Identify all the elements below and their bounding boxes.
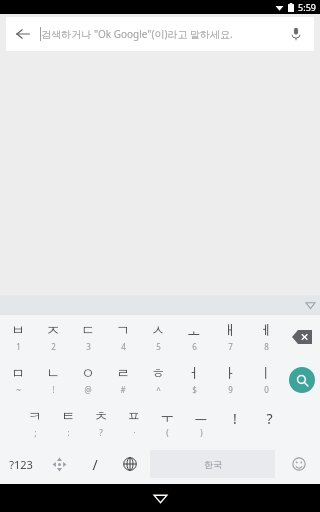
staticText: ㅌ [61, 408, 75, 426]
staticText: ㄹ [116, 365, 130, 383]
staticText: 2 [51, 341, 56, 352]
button[interactable]: ㅔ [248, 315, 284, 358]
staticText: ? [99, 427, 103, 438]
staticText: ㅅ [151, 322, 165, 340]
staticText: 0 [264, 384, 269, 395]
button[interactable]: ?123 [0, 444, 42, 484]
staticText: ㅊ [94, 408, 108, 426]
staticText: ㅁ [11, 365, 25, 383]
button[interactable]: ㅅ [140, 315, 176, 358]
staticText: 7 [228, 341, 233, 352]
staticText: 9 [228, 384, 233, 395]
button[interactable]: ㅓ [176, 358, 212, 401]
staticText: ? [266, 409, 273, 428]
staticText: ^ [156, 384, 161, 395]
button[interactable]: Cursor control [42, 444, 77, 484]
staticText: ㅗ [187, 322, 201, 340]
button[interactable]: ㅐ [212, 315, 248, 358]
button[interactable]: ㄴ [35, 358, 70, 401]
staticText: ㅈ [46, 322, 60, 340]
staticText: 한국 [204, 459, 222, 470]
staticText: 5:59 [298, 1, 316, 13]
staticText: ㄷ [81, 322, 95, 340]
staticText: ㄴ [46, 365, 60, 383]
button[interactable]: / [77, 444, 112, 484]
button[interactable]: ㅋ [18, 401, 51, 444]
staticText: ㅡ [194, 408, 208, 426]
staticText: @ [84, 384, 92, 395]
button[interactable]: ㅏ [212, 358, 248, 401]
staticText: ?123 [9, 457, 33, 472]
button[interactable]: ㅜ [150, 401, 184, 444]
button[interactable]: ㅣ [248, 358, 284, 401]
button[interactable]: Change language [112, 444, 147, 484]
button[interactable]: Backspace [284, 315, 320, 358]
staticText: ! [52, 384, 55, 395]
button[interactable]: ! [218, 401, 252, 444]
button[interactable]: Hide keyboard [146, 484, 174, 512]
staticText: ㅇ [81, 365, 95, 383]
button[interactable]: Expand suggestions [300, 295, 320, 315]
staticText: # [120, 384, 126, 395]
button[interactable]: Voice search [278, 17, 314, 51]
staticText: 4 [121, 341, 126, 352]
button[interactable]: ㅂ [0, 315, 35, 358]
staticText: ㄱ [116, 322, 130, 340]
staticText: 5 [156, 341, 161, 352]
staticText: $ [192, 384, 197, 395]
button[interactable]: ㅁ [0, 358, 35, 401]
staticText: 8 [264, 341, 269, 352]
button[interactable]: ㄷ [70, 315, 105, 358]
button[interactable]: Back [6, 17, 40, 51]
button[interactable]: 한국 [150, 450, 275, 478]
staticText: · [133, 427, 136, 438]
staticText: ㅜ [160, 408, 174, 426]
button[interactable]: Search [284, 358, 320, 401]
button[interactable]: ? [252, 401, 286, 444]
button[interactable]: ㄱ [105, 315, 140, 358]
staticText: ㅂ [11, 322, 25, 340]
button[interactable]: Emoji [278, 444, 320, 484]
staticText: 3 [86, 341, 91, 352]
button[interactable]: ㅗ [176, 315, 212, 358]
staticText: ㅎ [151, 365, 165, 383]
staticText: ㅓ [187, 365, 201, 383]
staticText: ; [34, 427, 37, 438]
staticText: : [67, 427, 70, 438]
staticText: ㅔ [259, 322, 273, 340]
staticText: ( [166, 427, 169, 438]
staticText: ㅋ [28, 408, 42, 426]
staticText: 검색하거나 "Ok Google"(이)라고 말하세요. [41, 27, 233, 41]
staticText: ) [200, 427, 203, 438]
button[interactable]: ㄹ [105, 358, 140, 401]
staticText: ㅣ [259, 365, 273, 383]
staticText: 6 [192, 341, 197, 352]
staticText: ! [233, 409, 237, 428]
button[interactable]: ㅎ [140, 358, 176, 401]
staticText: ㅍ [127, 408, 141, 426]
button[interactable]: ㅊ [84, 401, 117, 444]
button[interactable]: ㅌ [51, 401, 84, 444]
staticText: ㅏ [223, 365, 237, 383]
button[interactable]: ㅇ [70, 358, 105, 401]
staticText: ㅐ [223, 322, 237, 340]
button[interactable]: ㅡ [184, 401, 218, 444]
button[interactable]: ㅍ [117, 401, 150, 444]
button[interactable]: ㅈ [35, 315, 70, 358]
staticText: ~ [16, 384, 21, 395]
staticText: 1 [16, 341, 21, 352]
staticText: / [92, 455, 98, 474]
